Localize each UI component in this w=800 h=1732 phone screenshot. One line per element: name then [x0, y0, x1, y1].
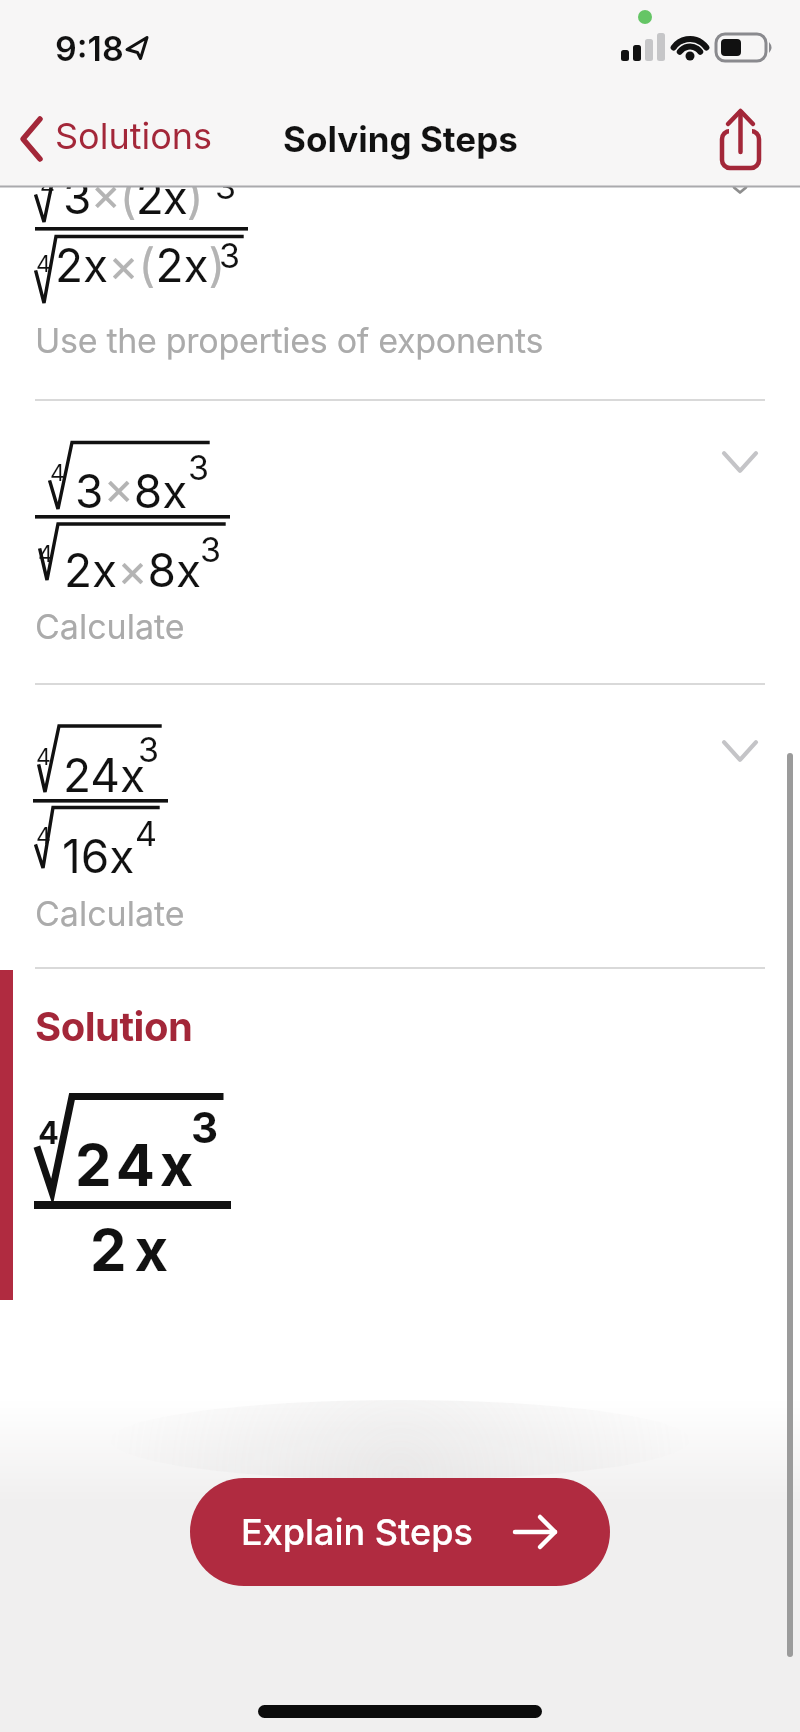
staticText: 3 [215, 166, 237, 207]
staticText: 4 [36, 250, 51, 278]
staticText: Solution [35, 1002, 193, 1050]
staticText: 3×(2x) [63, 169, 203, 225]
staticText: 16x [62, 828, 135, 884]
button[interactable] [712, 106, 772, 176]
staticText: 24x [75, 1130, 199, 1200]
staticText: 2x×(2x) [55, 237, 226, 293]
staticText: 4 [50, 459, 65, 487]
staticText: 4 [36, 822, 51, 850]
staticText: Solutions [55, 114, 213, 158]
staticText: Solving Steps [283, 118, 518, 160]
staticText: 4 [38, 540, 53, 568]
button[interactable]: Explain Steps [190, 1478, 610, 1586]
staticText: 4 [38, 1114, 59, 1152]
staticText: Use the properties of exponents [35, 320, 544, 361]
button[interactable] [0, 402, 800, 684]
staticText: Calculate [35, 606, 185, 647]
staticText: 4 [135, 813, 157, 854]
staticText: 3 [200, 529, 222, 570]
staticText: 3 [188, 447, 210, 488]
staticText: 3×8x [75, 463, 188, 519]
staticText: 4 [36, 743, 51, 771]
staticText: Calculate [35, 893, 185, 934]
staticText: 24x [63, 747, 146, 803]
button[interactable]: Solutions [15, 112, 225, 168]
staticText: 3 [138, 729, 160, 770]
staticText: 2x [90, 1215, 177, 1285]
button[interactable] [0, 686, 800, 968]
staticText: 9:18 [55, 28, 124, 69]
staticText: 4 [40, 172, 55, 200]
staticText: 2x×8x [64, 542, 202, 598]
staticText: Explain Steps [241, 1510, 473, 1554]
staticText: 3 [219, 235, 241, 276]
staticText: 3 [191, 1102, 219, 1153]
